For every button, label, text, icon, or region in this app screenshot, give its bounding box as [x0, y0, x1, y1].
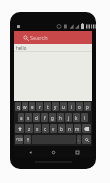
button[interactable]: d	[33, 113, 40, 122]
staticText: z	[28, 126, 31, 132]
button[interactable]: s	[25, 113, 32, 122]
staticText: Search	[30, 34, 48, 42]
button[interactable]: k	[73, 113, 80, 122]
button[interactable]: u	[60, 102, 67, 111]
staticText: hello	[16, 45, 27, 51]
staticText: r	[39, 104, 41, 110]
staticText: s	[27, 115, 30, 121]
staticText: y	[54, 104, 57, 110]
staticText: t	[47, 104, 49, 110]
button[interactable]: .	[77, 135, 81, 144]
button[interactable]: Search	[14, 31, 92, 44]
button[interactable]: ?123	[15, 135, 23, 144]
button[interactable]: Shift	[15, 124, 24, 133]
staticText: g	[51, 115, 54, 121]
button[interactable]: q	[15, 102, 21, 111]
button[interactable]: b	[58, 124, 65, 133]
button[interactable]: Search	[82, 135, 91, 144]
staticText: w	[23, 104, 27, 110]
staticText: d	[35, 115, 38, 121]
button[interactable]: a	[18, 113, 24, 122]
button[interactable]: t	[44, 102, 51, 111]
staticText: n	[68, 126, 71, 132]
button[interactable]: f	[41, 113, 48, 122]
button[interactable]: w	[22, 102, 28, 111]
staticText: v	[52, 126, 55, 132]
staticText: i	[71, 104, 73, 110]
button[interactable]: r	[36, 102, 43, 111]
button[interactable]: e	[29, 102, 35, 111]
staticText: m	[75, 126, 80, 132]
button[interactable]: h	[57, 113, 64, 122]
staticText: x	[36, 126, 39, 132]
staticText: h	[59, 115, 62, 121]
staticText: o	[78, 104, 81, 110]
button[interactable]: i	[68, 102, 75, 111]
button[interactable]: j	[65, 113, 72, 122]
staticText: a	[20, 115, 23, 121]
button[interactable]: o	[76, 102, 83, 111]
button[interactable]: Back	[22, 146, 38, 157]
button[interactable]: Voice input	[24, 135, 31, 144]
button[interactable]: c	[42, 124, 49, 133]
staticText: ?123	[16, 138, 23, 142]
button[interactable]: n	[66, 124, 73, 133]
button[interactable]: Backspace	[82, 124, 91, 133]
button[interactable]: z	[25, 124, 33, 133]
button[interactable]: hello	[14, 44, 92, 52]
staticText: f	[44, 115, 46, 121]
button[interactable]: l	[81, 113, 88, 122]
button[interactable]: p	[84, 102, 91, 111]
staticText: e	[31, 104, 34, 110]
button[interactable]: Home	[45, 146, 61, 157]
staticText: .	[78, 137, 80, 142]
staticText: q	[17, 104, 20, 110]
staticText: u	[62, 104, 65, 110]
staticText: k	[75, 115, 78, 121]
button[interactable]: m	[74, 124, 81, 133]
staticText: p	[86, 104, 89, 110]
staticText: b	[60, 126, 63, 132]
staticText: l	[84, 115, 86, 121]
staticText: j	[68, 115, 70, 121]
staticText: c	[44, 126, 47, 132]
button[interactable]: v	[50, 124, 57, 133]
button[interactable]: Recents	[69, 146, 85, 157]
button[interactable]: y	[52, 102, 59, 111]
button[interactable]: g	[49, 113, 56, 122]
button[interactable]: x	[34, 124, 41, 133]
